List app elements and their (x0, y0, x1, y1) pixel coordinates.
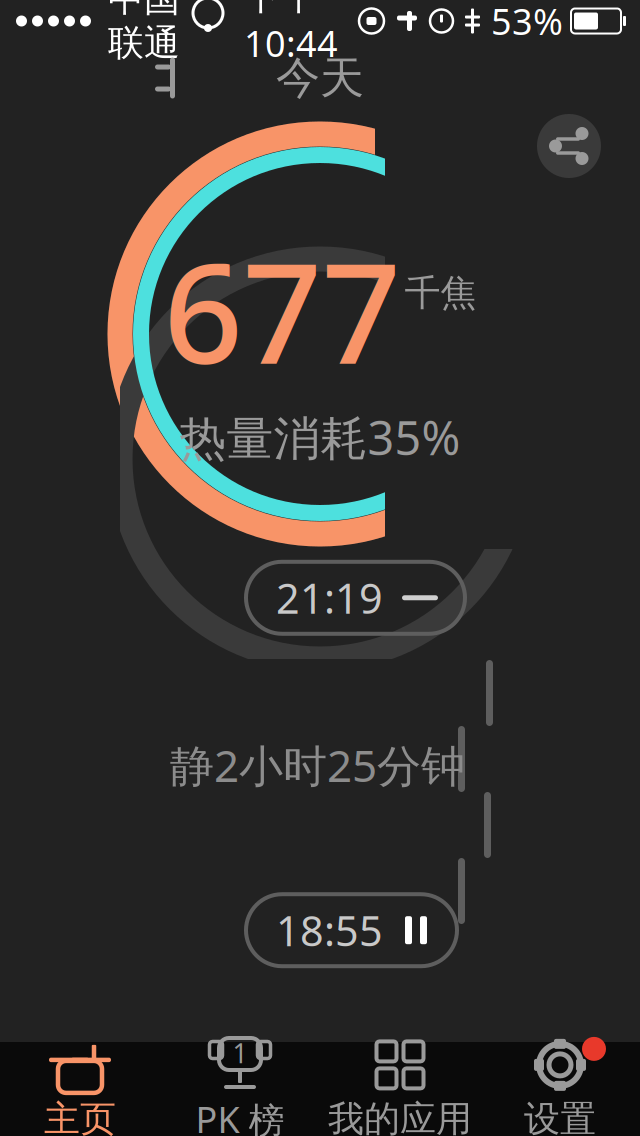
staticText: 设置 (524, 1097, 596, 1136)
staticText: 我的应用 (328, 1097, 472, 1136)
staticText: 千焦 (404, 271, 476, 315)
button[interactable]: 设置 (480, 1042, 640, 1136)
button[interactable]: 18:55 (246, 894, 457, 966)
staticText: 静2小时25分钟 (170, 736, 465, 794)
button[interactable]: 我的应用 (320, 1042, 480, 1136)
staticText: PK 榜 (195, 1095, 284, 1136)
button[interactable]: 21:19 (246, 562, 465, 634)
button[interactable]: 分享 (537, 114, 601, 178)
staticText: 18:55 (276, 903, 383, 958)
staticText: 下午10:44 (244, 0, 338, 67)
staticText: 热量消耗35% (179, 406, 460, 468)
button[interactable]: 主页 (0, 1042, 160, 1136)
staticText: 677 (163, 218, 400, 402)
staticText: 中国联通 (108, 0, 180, 65)
button[interactable]: 返回 (132, 42, 204, 114)
staticText: 21:19 (276, 570, 383, 625)
staticText: 1 (232, 1035, 247, 1071)
button[interactable]: 1 (160, 1042, 320, 1136)
staticText: 53% (491, 0, 563, 45)
staticText: 今天 (276, 51, 364, 105)
staticText: 主页 (44, 1097, 116, 1136)
